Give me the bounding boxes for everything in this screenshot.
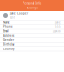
staticText: Personal Info — [22, 2, 41, 5]
staticText: Jane Cooper — [10, 12, 28, 15]
staticText: 555 — [55, 25, 61, 29]
staticText: Jane — [55, 21, 61, 24]
button[interactable]: Address — [0, 34, 64, 38]
button[interactable]: Birthday — [0, 42, 64, 47]
staticText: Phone — [3, 25, 13, 29]
staticText: Edit — [10, 16, 15, 19]
staticText: Country — [3, 47, 14, 51]
staticText: Name — [3, 21, 10, 24]
staticText: Address — [3, 34, 14, 37]
staticText: Settings — [26, 6, 37, 9]
staticText: Email — [3, 29, 9, 33]
staticText: Gender — [3, 38, 14, 42]
staticText: Birthday — [3, 43, 14, 46]
button[interactable]: Name — [0, 20, 64, 25]
button[interactable]: Country — [0, 47, 64, 51]
button[interactable]: Email — [0, 29, 64, 34]
button[interactable]: Gender — [0, 38, 64, 42]
button[interactable]: Phone — [0, 25, 64, 29]
staticText: j@x.co — [53, 29, 61, 33]
